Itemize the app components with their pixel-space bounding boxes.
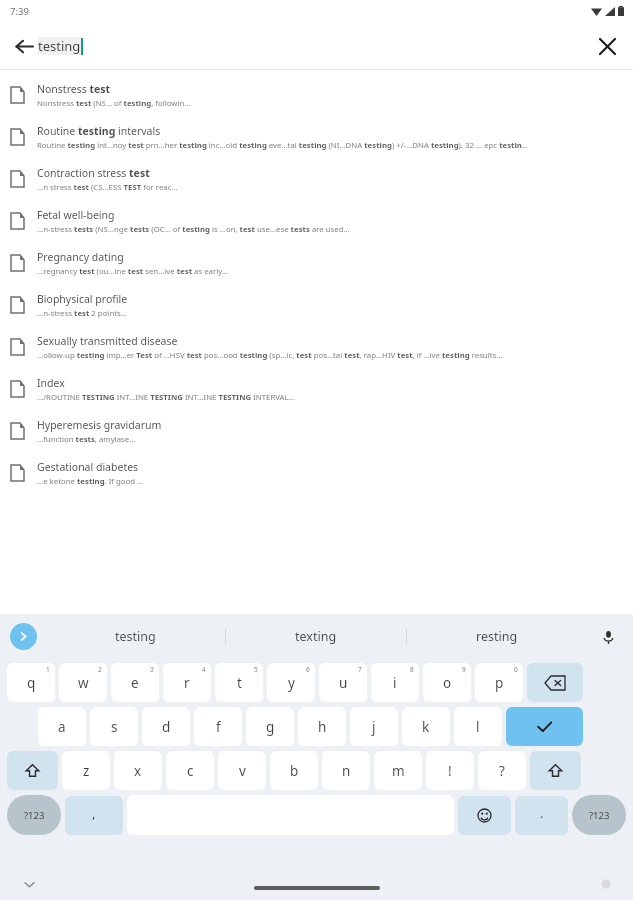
staticText: b (290, 762, 299, 780)
button[interactable]: testing (46, 614, 225, 659)
button[interactable]: Routine testing intervals (0, 116, 633, 158)
staticText: ! (448, 762, 452, 780)
button[interactable]: 2 (59, 663, 107, 702)
button[interactable]: Backspace (527, 663, 583, 702)
staticText: z (83, 762, 90, 780)
staticText: ?123 (589, 809, 610, 822)
button[interactable]: ? (478, 751, 526, 790)
staticText: 8 (410, 665, 414, 674)
staticText: testing (115, 628, 156, 645)
staticText: Pregnancy dating (37, 250, 124, 264)
button[interactable]: 5 (215, 663, 263, 702)
staticText: Biophysical profile (37, 292, 128, 306)
button[interactable]: l (454, 707, 502, 746)
staticText: i (393, 674, 397, 692)
button[interactable]: j (350, 707, 398, 746)
button[interactable]: 6 (267, 663, 315, 702)
staticText: Fetal well-being (37, 208, 115, 222)
staticText: …n-stress test 2 points… (37, 308, 127, 319)
button[interactable]: m (374, 751, 422, 790)
staticText: r (184, 674, 190, 692)
staticText: Contraction stress test (37, 166, 150, 180)
button[interactable]: ?123 (572, 795, 626, 835)
staticText: …regnancy test (ou…ine test sen…ive test… (37, 266, 229, 277)
staticText: u (339, 674, 348, 692)
button[interactable]: Contraction stress test (0, 158, 633, 200)
button[interactable]: Hide keyboard (16, 871, 42, 897)
button[interactable]: Keyboard settings (595, 873, 617, 895)
staticText: 6 (306, 665, 310, 674)
staticText: y (288, 674, 295, 692)
button[interactable]: Gestational diabetes (0, 452, 633, 494)
button[interactable]: Comma (65, 796, 123, 835)
button[interactable]: ! (426, 751, 474, 790)
button[interactable]: b (270, 751, 318, 790)
button[interactable]: Pregnancy dating (0, 242, 633, 284)
button[interactable]: c (166, 751, 214, 790)
button[interactable]: Period (515, 796, 568, 835)
button[interactable]: Index (0, 368, 633, 410)
button[interactable]: 9 (423, 663, 471, 702)
staticText: 5 (254, 665, 258, 674)
staticText: …e ketone testing. If good … (37, 476, 144, 487)
staticText: 7:39 (10, 5, 29, 18)
staticText: Index (37, 376, 65, 390)
staticText: t (237, 674, 242, 692)
staticText: …/ROUTINE TESTING INT…INE TESTING INT…IN… (37, 392, 295, 403)
staticText: 2 (98, 665, 102, 674)
button[interactable]: 7 (319, 663, 367, 702)
staticText: j (372, 718, 376, 736)
button[interactable]: Voice input (593, 622, 623, 652)
button[interactable]: Fetal well-being (0, 200, 633, 242)
staticText: f (216, 718, 221, 736)
button[interactable]: g (246, 707, 294, 746)
staticText: 7 (358, 665, 362, 674)
button[interactable]: texting (226, 614, 406, 659)
button[interactable]: 8 (371, 663, 419, 702)
button[interactable]: Sexually transmitted disease (0, 326, 633, 368)
staticText: o (443, 674, 452, 692)
button[interactable]: Enter (506, 707, 583, 746)
button[interactable]: s (90, 707, 138, 746)
button[interactable]: n (322, 751, 370, 790)
staticText: 3 (150, 665, 154, 674)
staticText: k (422, 718, 430, 736)
button[interactable]: Shift (7, 751, 58, 790)
button[interactable]: z (62, 751, 110, 790)
button[interactable]: resting (407, 614, 587, 659)
staticText: 4 (202, 665, 206, 674)
staticText: 1 (46, 665, 50, 674)
button[interactable]: Emoji (458, 796, 511, 835)
staticText: Gestational diabetes (37, 460, 139, 474)
button[interactable]: k (402, 707, 450, 746)
staticText: c (187, 762, 194, 780)
staticText: 0 (514, 665, 518, 674)
button[interactable]: Nonstress test (0, 74, 633, 116)
staticText: testing (38, 37, 81, 55)
button[interactable]: Clear search (587, 26, 627, 66)
button[interactable]: ?123 (7, 795, 61, 835)
button[interactable]: h (298, 707, 346, 746)
button[interactable]: Back (4, 26, 44, 66)
button[interactable]: 4 (163, 663, 211, 702)
button[interactable]: v (218, 751, 266, 790)
staticText: w (78, 674, 89, 692)
button[interactable]: Shift (530, 751, 581, 790)
staticText: Routine testing int…noy test prn…her tes… (37, 140, 529, 151)
staticText: …ollow-up testing imp…er Test of …HSV te… (37, 350, 503, 361)
button[interactable]: f (194, 707, 242, 746)
button[interactable]: More suggestions (10, 623, 37, 650)
staticText: resting (476, 628, 518, 645)
staticText: a (58, 718, 66, 736)
button[interactable]: a (38, 707, 86, 746)
button[interactable]: 0 (475, 663, 523, 702)
button[interactable]: 3 (111, 663, 159, 702)
button[interactable]: Hyperemesis gravidarum (0, 410, 633, 452)
button[interactable]: 1 (7, 663, 55, 702)
button[interactable]: Biophysical profile (0, 284, 633, 326)
button[interactable]: x (114, 751, 162, 790)
button[interactable]: d (142, 707, 190, 746)
staticText: e (131, 674, 139, 692)
staticText: Hyperemesis gravidarum (37, 418, 162, 432)
